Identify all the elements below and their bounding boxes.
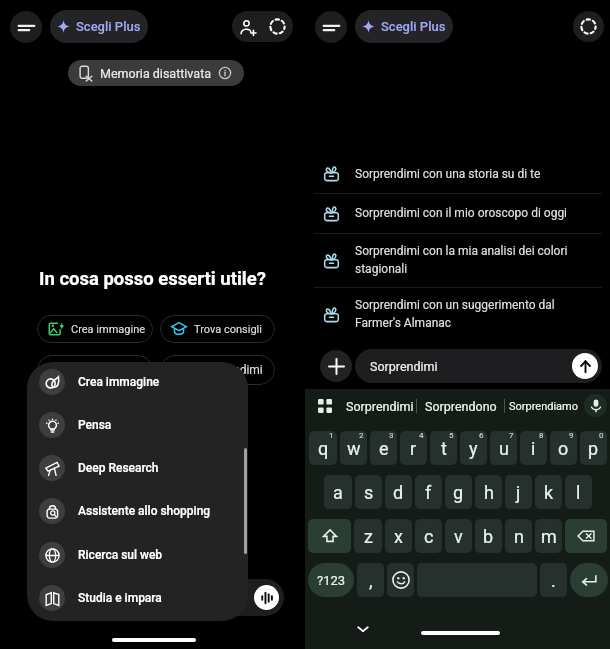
staticText: Crea immagine	[78, 375, 160, 389]
staticText: b	[483, 526, 494, 547]
staticText: ndimi	[233, 363, 263, 377]
button[interactable]: Sorprendimi	[344, 389, 416, 423]
button[interactable]: Deep Research	[27, 446, 248, 489]
button[interactable]: Voice input	[584, 394, 607, 417]
button[interactable]: .	[540, 563, 567, 597]
staticText: 5	[449, 431, 454, 440]
button[interactable]: Menu	[315, 11, 347, 43]
button[interactable]: Scegli Plus	[50, 10, 148, 43]
button[interactable]: Enter	[570, 563, 608, 597]
staticText: In cosa posso esserti utile?	[39, 268, 266, 290]
button[interactable]: j	[505, 475, 532, 509]
staticText: ?123	[317, 573, 346, 588]
button[interactable]: Pensa	[27, 403, 248, 446]
button[interactable]: ,	[357, 563, 384, 597]
button[interactable]: u	[490, 431, 517, 465]
button[interactable]: Menu	[10, 11, 42, 43]
staticText: l	[576, 482, 581, 503]
staticText: k	[544, 482, 554, 503]
button[interactable]: o	[550, 431, 577, 465]
staticText: Scegli Plus	[76, 19, 141, 34]
staticText: Sorprendimi	[370, 359, 438, 374]
button[interactable]: t	[430, 431, 457, 465]
button[interactable]: Scegli Plus	[355, 10, 453, 43]
staticText: x	[394, 526, 403, 547]
staticText: y	[469, 438, 478, 459]
button[interactable]: Invite	[232, 12, 262, 42]
button[interactable]: g	[445, 475, 472, 509]
staticText: m	[541, 526, 557, 547]
button[interactable]: Backspace	[565, 519, 607, 553]
button[interactable]: Crea immagine	[37, 315, 153, 343]
button[interactable]: l	[565, 475, 592, 509]
button[interactable]: Clipboard	[314, 395, 335, 416]
button[interactable]: s	[355, 475, 382, 509]
staticText: r	[410, 438, 417, 459]
staticText: Assistente allo shopping	[78, 504, 211, 518]
staticText: 2	[359, 431, 364, 440]
button[interactable]: Sorprendimi con una storia su di te	[305, 154, 610, 193]
button[interactable]: Scan	[262, 11, 293, 42]
button[interactable]: x	[385, 519, 412, 553]
button[interactable]: Studia e impara	[27, 576, 248, 619]
button[interactable]: Ricerca sul web	[27, 533, 248, 576]
button[interactable]: Sorprendimi	[355, 349, 602, 383]
button[interactable]: q	[309, 431, 337, 465]
button[interactable]: k	[535, 475, 562, 509]
staticText: Crea immagine	[71, 323, 146, 336]
staticText: j	[516, 482, 521, 503]
button[interactable]: f	[415, 475, 442, 509]
staticText: Ricerca sul web	[78, 548, 163, 562]
staticText: h	[484, 482, 494, 503]
button[interactable]: n	[505, 519, 532, 553]
button[interactable]: m	[535, 519, 562, 553]
button[interactable]: Trova consigli	[160, 315, 275, 343]
staticText: Sorprendimi con la mia analisi dei color…	[355, 244, 568, 276]
button[interactable]: Hide keyboard	[353, 619, 373, 639]
staticText: s	[364, 482, 374, 503]
staticText: f	[425, 482, 432, 503]
button[interactable]: Suggestion	[37, 355, 153, 385]
staticText: Scegli Plus	[381, 19, 446, 34]
staticText: ,	[369, 570, 373, 591]
button[interactable]: Voice mode	[254, 585, 279, 610]
staticText: Sorprendimi con il mio oroscopo di oggi	[355, 206, 568, 220]
button[interactable]: z	[354, 519, 382, 553]
button[interactable]: Send	[572, 353, 598, 379]
staticText: z	[364, 526, 373, 547]
button[interactable]: Sorprendono	[417, 389, 504, 423]
button[interactable]: Sorprendimi con il mio oroscopo di oggi	[305, 193, 610, 233]
button[interactable]: Add attachment	[320, 350, 352, 382]
button[interactable]: Emoji	[387, 563, 414, 597]
button[interactable]: e	[370, 431, 397, 465]
button[interactable]: Scan	[573, 11, 604, 42]
staticText: w	[347, 438, 361, 459]
button[interactable]: Sorprendimi con la mia analisi dei color…	[305, 233, 610, 287]
button[interactable]: w	[340, 431, 367, 465]
button[interactable]: Shift	[308, 519, 351, 553]
staticText: 1	[329, 431, 334, 440]
button[interactable]: ?123	[308, 563, 354, 597]
staticText: Memoria disattivata	[100, 66, 212, 81]
button[interactable]: h	[475, 475, 502, 509]
button[interactable]: Sorprendiamo	[505, 389, 583, 423]
button[interactable]: y	[460, 431, 487, 465]
button[interactable]: Memoria disattivata	[68, 60, 244, 86]
staticText: Pensa	[78, 418, 112, 432]
button[interactable]: Sorprendimi con un suggerimento dal Farm…	[305, 287, 610, 341]
button[interactable]: r	[400, 431, 427, 465]
staticText: Sorprendimi con una storia su di te	[355, 167, 541, 181]
button[interactable]: v	[445, 519, 472, 553]
staticText: o	[558, 438, 569, 459]
button[interactable]: Crea immagine	[27, 362, 248, 403]
button[interactable]: Assistente allo shopping	[27, 489, 248, 532]
button[interactable]: a	[324, 475, 352, 509]
button[interactable]: c	[415, 519, 442, 553]
button[interactable]: i	[520, 431, 547, 465]
button[interactable]: p	[580, 431, 607, 465]
button[interactable]: b	[475, 519, 502, 553]
button[interactable]: d	[385, 475, 412, 509]
button[interactable]: ndimi	[160, 355, 275, 385]
staticText: Studia e impara	[78, 591, 162, 605]
